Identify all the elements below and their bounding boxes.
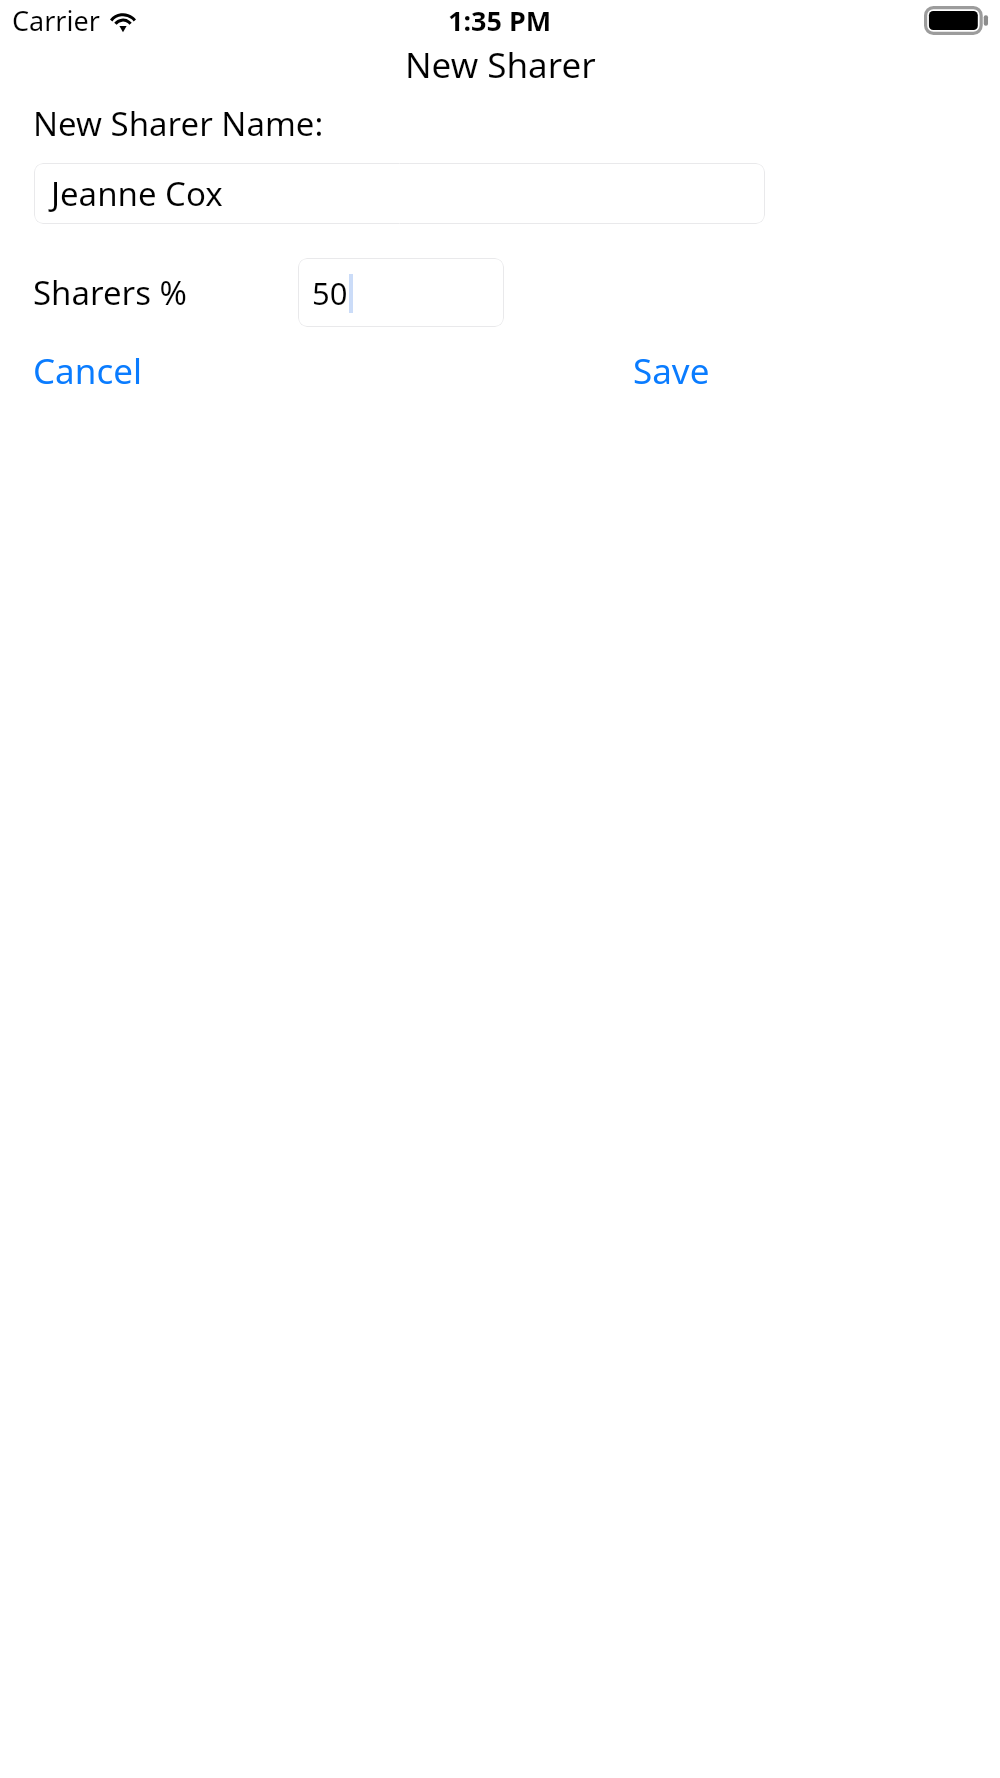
staticText: New Sharer <box>405 41 596 89</box>
button[interactable]: Jeanne Cox <box>34 163 765 224</box>
button[interactable]: 50 <box>298 258 504 327</box>
other: Wi-Fi signal <box>108 9 138 32</box>
button[interactable]: Save <box>633 347 710 395</box>
staticText: 50 <box>312 272 348 314</box>
staticText: Jeanne Cox <box>51 171 223 216</box>
staticText: New Sharer Name: <box>33 101 324 146</box>
staticText: Carrier <box>12 2 100 39</box>
staticText: Cancel <box>33 347 142 395</box>
other: Battery full <box>924 6 990 35</box>
staticText: Save <box>633 347 710 395</box>
staticText: 1:35 PM <box>448 2 552 39</box>
staticText: Sharers % <box>33 270 188 315</box>
button[interactable]: Cancel <box>33 347 142 395</box>
